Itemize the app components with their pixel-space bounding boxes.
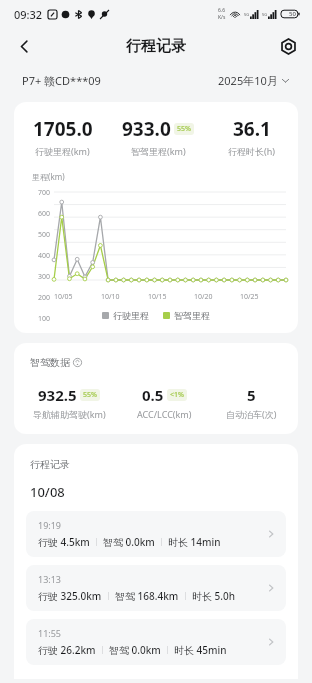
staticText: 行驶 325.0km — [38, 589, 102, 603]
staticText: 时长 5.0h — [192, 589, 236, 603]
staticText: 智驾 0.0km — [103, 535, 155, 549]
staticText: 13:13 — [38, 573, 62, 585]
staticText: 50 — [289, 10, 296, 18]
button[interactable]: Back — [8, 30, 40, 62]
staticText: 5G — [244, 12, 250, 17]
staticText: 导航辅助驾驶(km) — [33, 408, 106, 420]
staticText: <1% — [170, 390, 184, 400]
staticText: 5G — [262, 12, 268, 17]
staticText: 6.6 — [218, 7, 226, 14]
button[interactable]: 19:19 — [26, 511, 286, 557]
button[interactable]: P7+ 赣CD***09 — [22, 73, 101, 88]
staticText: 时长 14min — [168, 535, 221, 549]
staticText: 100 — [28, 314, 50, 324]
staticText: 行程时长(h) — [228, 145, 275, 157]
staticText: 5 — [247, 385, 256, 405]
staticText: 700 — [28, 188, 50, 198]
staticText: 10/25 — [240, 292, 259, 302]
staticText: 1705.0 — [33, 116, 93, 142]
staticText: 10/08 — [30, 483, 65, 501]
staticText: 2025年10月 — [218, 73, 278, 88]
staticText: 36.1 — [233, 116, 271, 142]
staticText: K/s — [218, 14, 226, 21]
staticText: 300 — [28, 272, 50, 282]
button[interactable]: 2025年10月 — [218, 73, 290, 88]
staticText: 10/15 — [148, 292, 167, 302]
staticText: 400 — [28, 251, 50, 261]
staticText: 行驶里程(km) — [35, 145, 90, 157]
staticText: 10/10 — [101, 292, 120, 302]
staticText: 智驾 168.4km — [115, 589, 179, 603]
button[interactable]: Settings — [272, 30, 304, 62]
staticText: 0.5 — [142, 385, 164, 405]
staticText: 智驾 0.0km — [109, 643, 161, 657]
staticText: 行驶里程 — [113, 310, 149, 321]
staticText: 600 — [28, 209, 50, 219]
staticText: 55% — [177, 124, 191, 134]
staticText: 行驶 4.5km — [38, 535, 90, 549]
staticText: 11:55 — [38, 627, 62, 639]
staticText: 行程记录 — [126, 37, 186, 56]
staticText: 10/05 — [54, 292, 73, 302]
staticText: 19:19 — [38, 519, 62, 531]
staticText: 智驾数据 — [30, 356, 70, 369]
staticText: 智驾里程 — [174, 310, 210, 321]
staticText: 200 — [28, 293, 50, 303]
staticText: 500 — [28, 230, 50, 240]
staticText: 行程记录 — [30, 458, 70, 471]
staticText: 自动泊车(次) — [226, 408, 277, 420]
staticText: 55% — [83, 390, 97, 400]
staticText: 行驶 26.2km — [38, 643, 96, 657]
staticText: ACC/LCC(km) — [137, 408, 192, 420]
staticText: P7+ 赣CD***09 — [22, 73, 101, 88]
button[interactable]: 13:13 — [26, 565, 286, 611]
staticText: 932.5 — [38, 385, 77, 405]
staticText: 09:32 — [14, 7, 43, 22]
staticText: 智驾里程(km) — [131, 145, 186, 157]
staticText: 里程(km) — [32, 171, 65, 182]
staticText: 10/20 — [194, 292, 213, 302]
staticText: 时长 45min — [174, 643, 227, 657]
staticText: 933.0 — [122, 116, 171, 142]
button[interactable]: 11:55 — [26, 619, 286, 665]
